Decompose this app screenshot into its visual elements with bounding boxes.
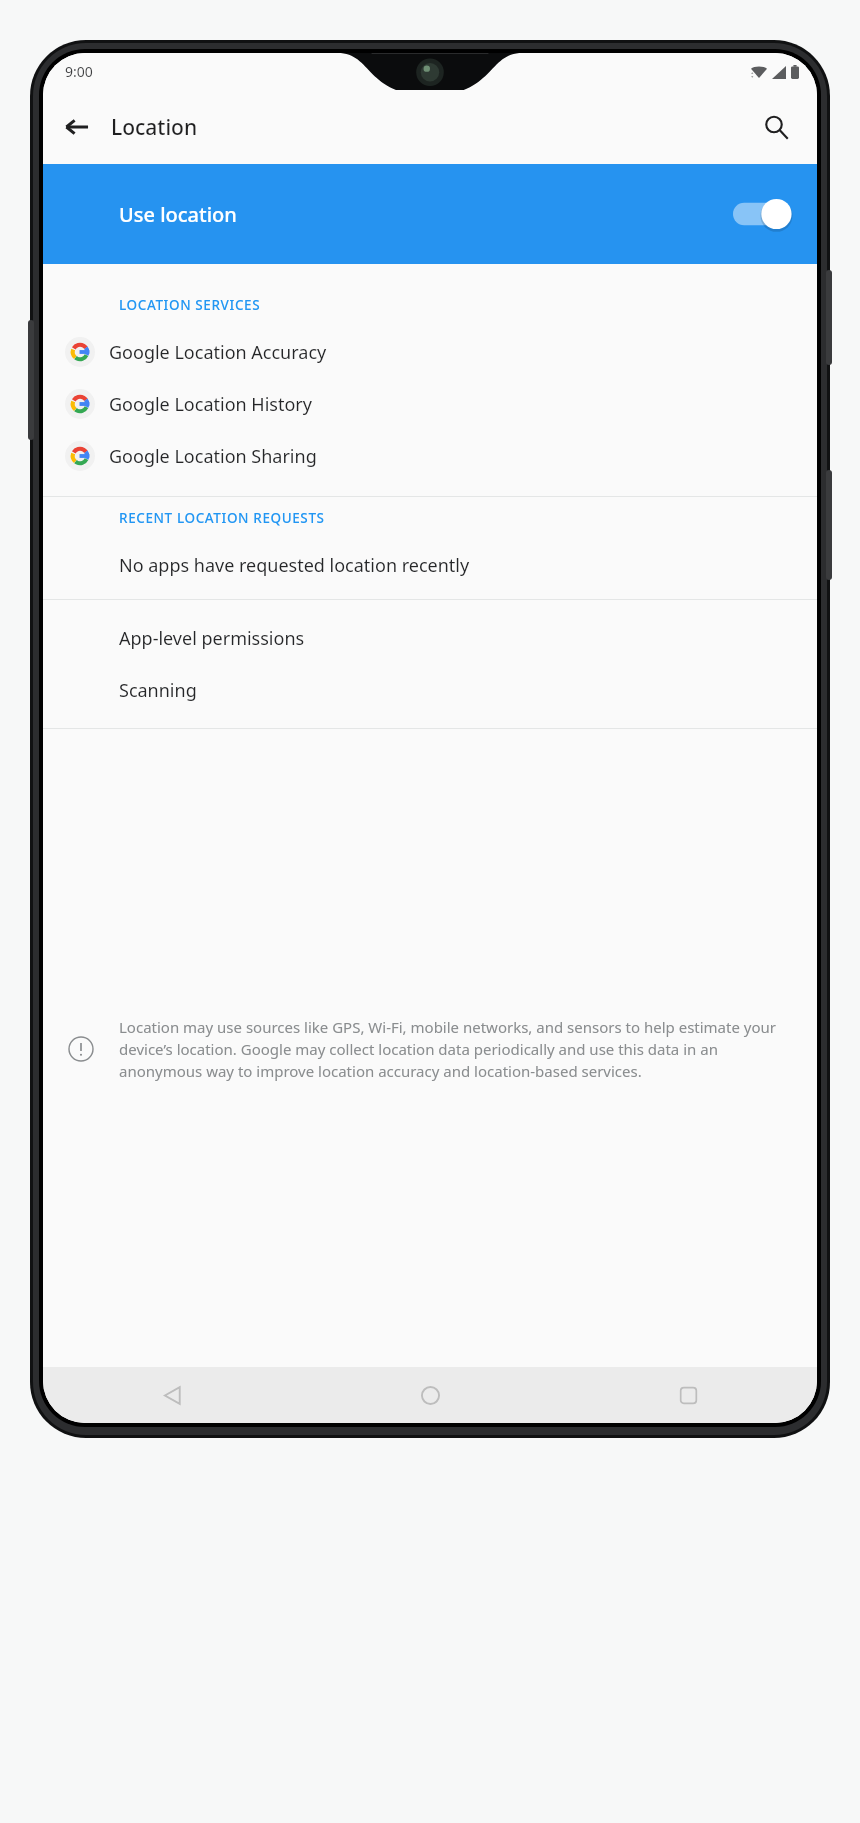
staticText: Scanning	[119, 678, 197, 703]
button[interactable]: Scanning	[43, 664, 817, 716]
staticText: 9:00	[65, 62, 93, 81]
staticText: Google Location Sharing	[109, 444, 317, 469]
button[interactable]: Back	[43, 1367, 301, 1423]
button[interactable]: No apps have requested location recently	[43, 539, 817, 591]
staticText: App-level permissions	[119, 626, 305, 651]
staticText: No apps have requested location recently	[119, 553, 470, 578]
button[interactable]: Home	[301, 1367, 559, 1423]
button[interactable]: Google Location History	[43, 378, 817, 430]
button[interactable]: Google Location Sharing	[43, 430, 817, 482]
staticText: Use location	[119, 201, 237, 228]
button[interactable]: Recent apps	[559, 1367, 817, 1423]
button[interactable]: Use location	[43, 164, 817, 264]
staticText: Location	[111, 113, 198, 142]
staticText: Google Location History	[109, 392, 312, 417]
button[interactable]: Google Location Accuracy	[43, 326, 817, 378]
button[interactable]: App-level permissions	[43, 612, 817, 664]
button[interactable]: Back	[53, 103, 101, 151]
staticText: Google Location Accuracy	[109, 340, 327, 365]
staticText: LOCATION SERVICES	[119, 296, 261, 314]
staticText: Location may use sources like GPS, Wi-Fi…	[119, 1017, 799, 1082]
staticText: RECENT LOCATION REQUESTS	[119, 509, 325, 527]
button[interactable]: Search	[753, 104, 799, 150]
